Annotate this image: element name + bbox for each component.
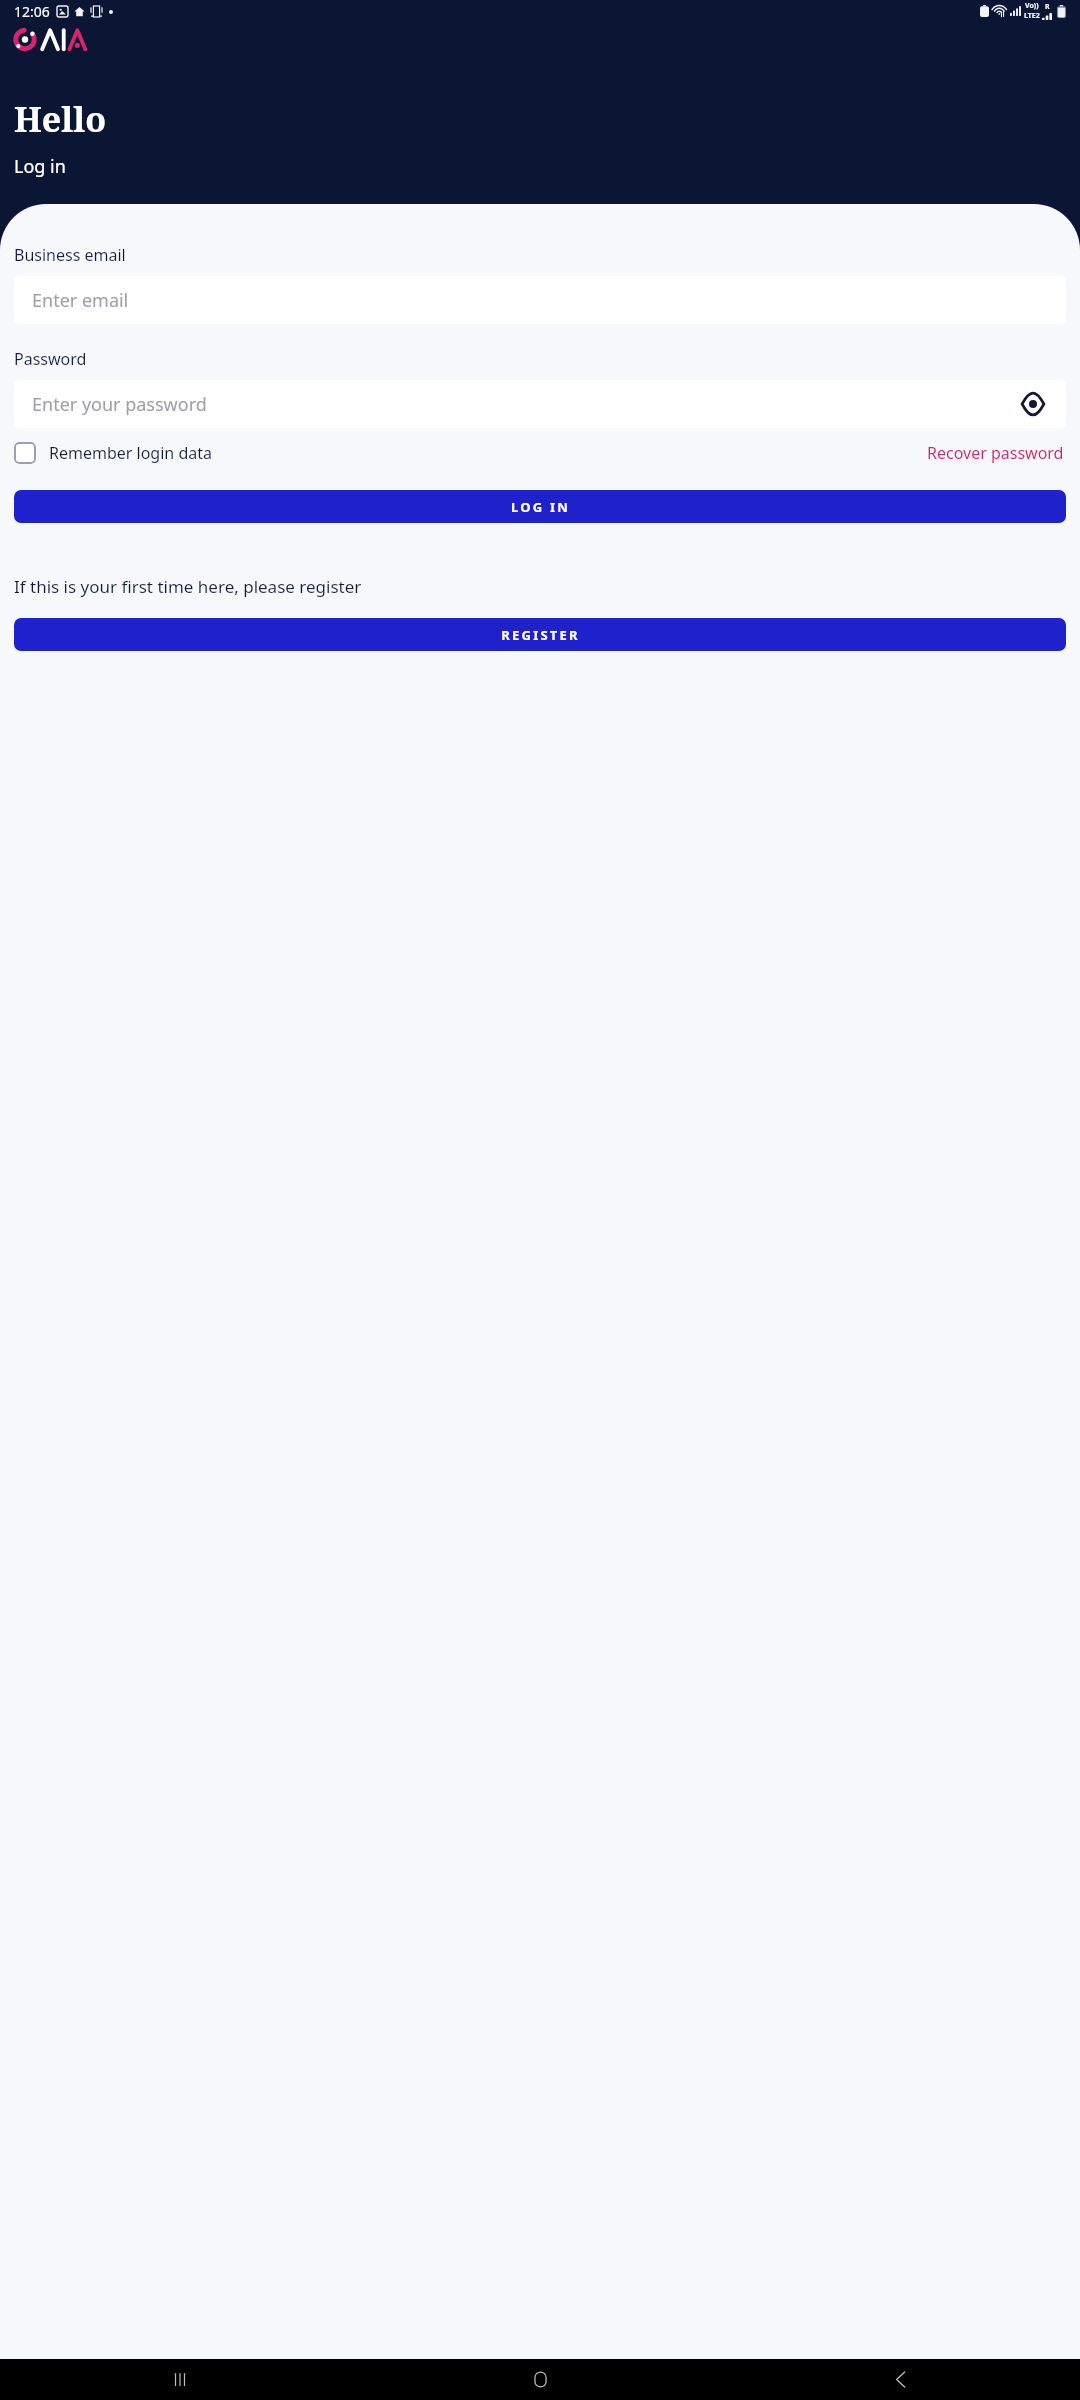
button[interactable]: Enter your password	[14, 380, 1066, 428]
staticText: Log in	[14, 154, 66, 179]
button[interactable]: LOG IN	[14, 490, 1066, 523]
staticText: Password	[14, 348, 87, 370]
button[interactable]: REGISTER	[14, 618, 1066, 651]
staticText: Vo))	[1025, 1, 1039, 11]
staticText: If this is your first time here, please …	[14, 575, 362, 598]
staticText: REGISTER	[501, 626, 580, 644]
button[interactable]: Recover password	[925, 438, 1066, 468]
button[interactable]: Show password	[1018, 389, 1048, 419]
button[interactable]: Recent apps	[0, 2359, 360, 2400]
staticText: 12:06	[14, 2, 50, 21]
staticText: R	[1045, 2, 1050, 12]
staticText: Hello	[14, 96, 107, 142]
staticText: LTE2	[1024, 11, 1040, 21]
staticText: LOG IN	[511, 498, 570, 516]
button[interactable]: Home	[360, 2359, 720, 2400]
staticText: Recover password	[927, 442, 1064, 464]
button[interactable]: Enter email	[14, 276, 1066, 324]
staticText: Business email	[14, 244, 126, 266]
button[interactable]: Back	[720, 2359, 1080, 2400]
staticText: Remember login data	[49, 442, 212, 464]
staticText: Enter your password	[32, 392, 207, 417]
staticText: Enter email	[32, 288, 129, 313]
button[interactable]: Remember login data	[14, 438, 212, 468]
